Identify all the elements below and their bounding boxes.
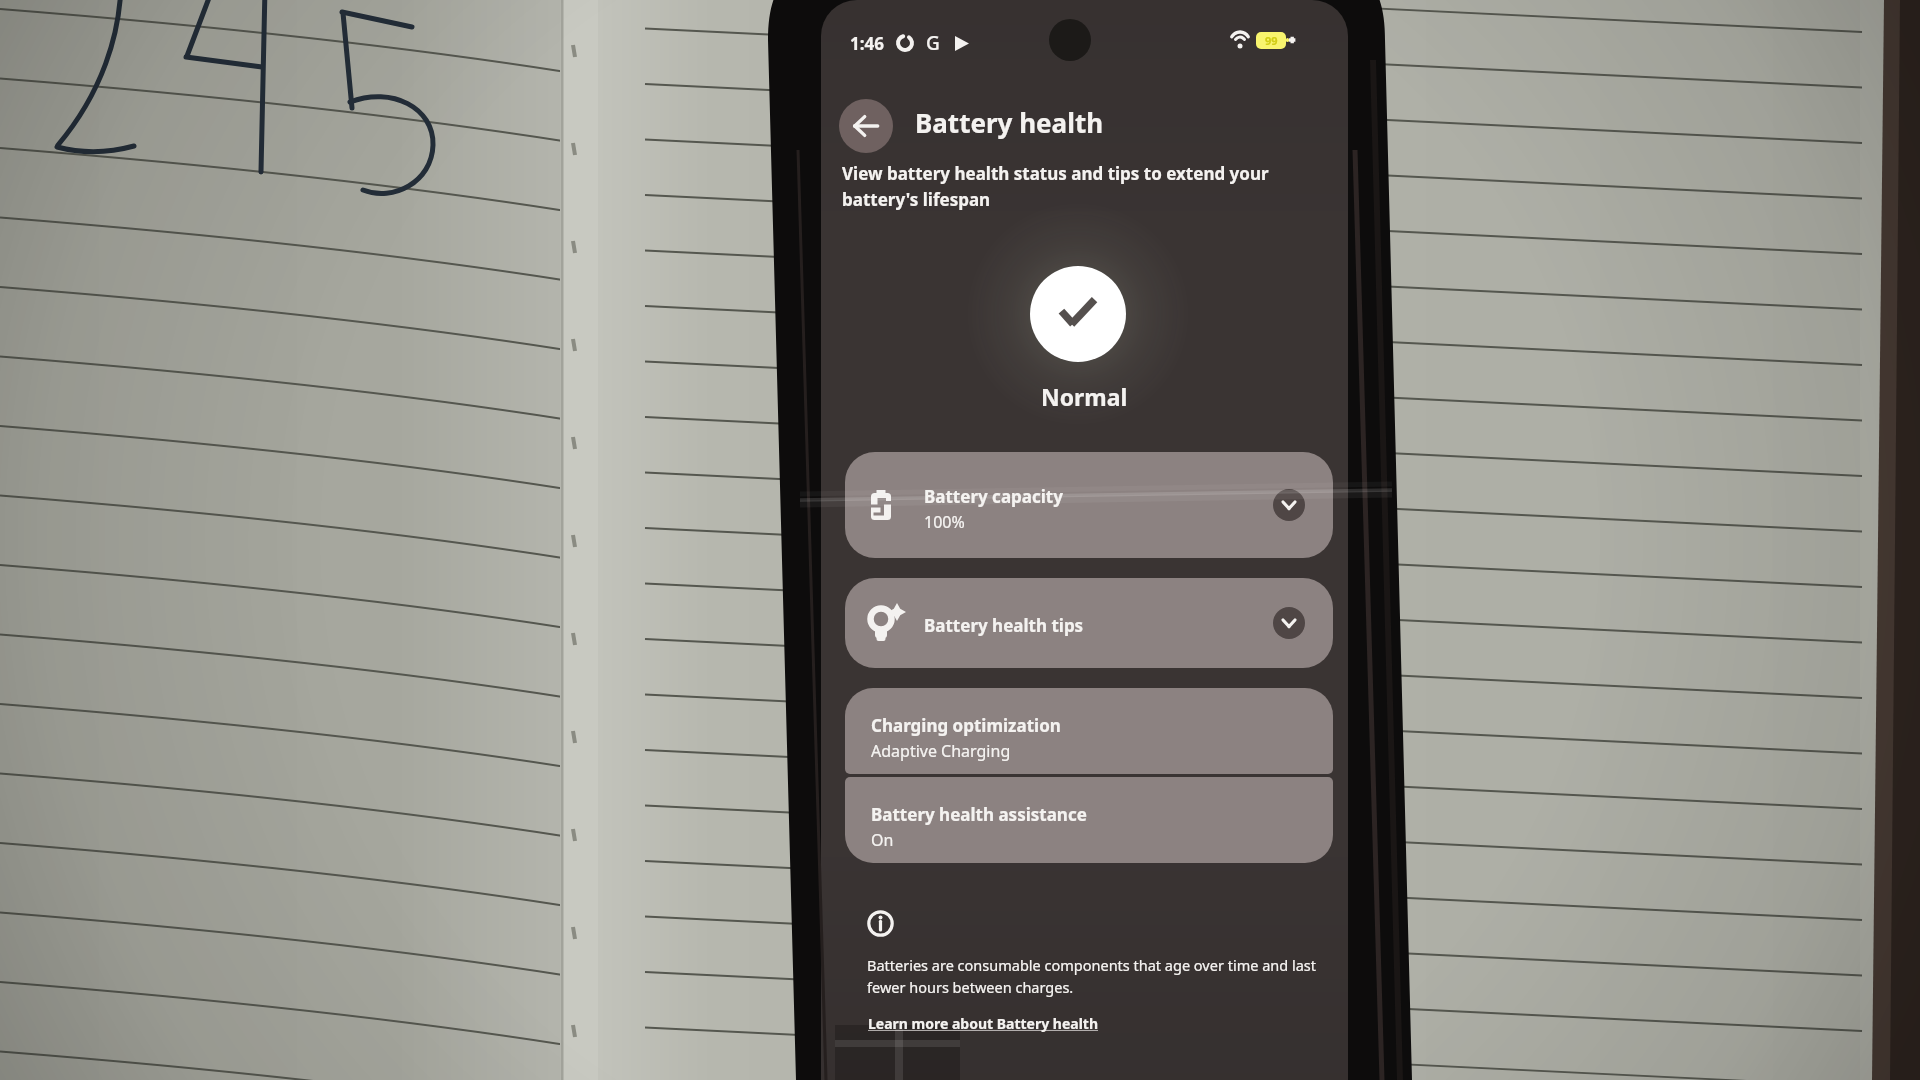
staticText: Battery health [915, 105, 1104, 140]
button[interactable]: Battery capacity [845, 452, 1333, 558]
button[interactable]: Back [839, 99, 893, 153]
staticText: G [926, 30, 940, 56]
staticText: Battery health tips [924, 614, 1084, 637]
staticText: Batteries are consumable components that… [867, 955, 1348, 997]
staticText: 99 [1265, 33, 1278, 48]
staticText: Battery health assistance [871, 803, 1087, 826]
staticText: Learn more about Battery health [868, 1014, 1099, 1033]
button[interactable]: Battery health tips [845, 578, 1333, 668]
button[interactable]: Learn more about Battery health [868, 1008, 1103, 1038]
staticText: Adaptive Charging [871, 740, 1011, 762]
staticText: 1:46 [850, 32, 884, 55]
staticText: Battery capacity [924, 485, 1063, 508]
staticText: 100% [924, 511, 965, 533]
button[interactable]: Charging optimization [845, 688, 1333, 774]
staticText: Charging optimization [871, 714, 1061, 737]
staticText: View battery health status and tips to e… [842, 162, 1348, 211]
staticText: Normal [1041, 381, 1128, 412]
staticText: On [871, 829, 894, 851]
button[interactable]: Battery health assistance [845, 777, 1333, 863]
